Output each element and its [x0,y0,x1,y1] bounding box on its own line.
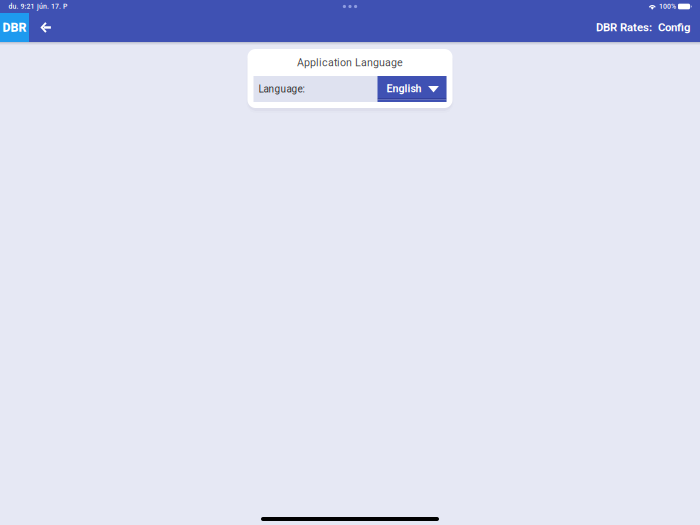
staticText: Language: [258,83,304,95]
staticText: DBR [2,20,26,35]
staticText: jún. 17. P [37,2,67,10]
button[interactable]: DBR Rates: Config [596,13,700,42]
button[interactable]: English [377,76,446,102]
staticText: English [386,82,421,95]
button[interactable]: DBR home [0,13,29,42]
staticText: 100% [659,2,676,10]
button[interactable]: Back [29,13,62,42]
staticText: Application Language [297,56,403,69]
staticText: du. 9:21 [9,2,35,10]
staticText: DBR Rates: Config [596,21,690,34]
